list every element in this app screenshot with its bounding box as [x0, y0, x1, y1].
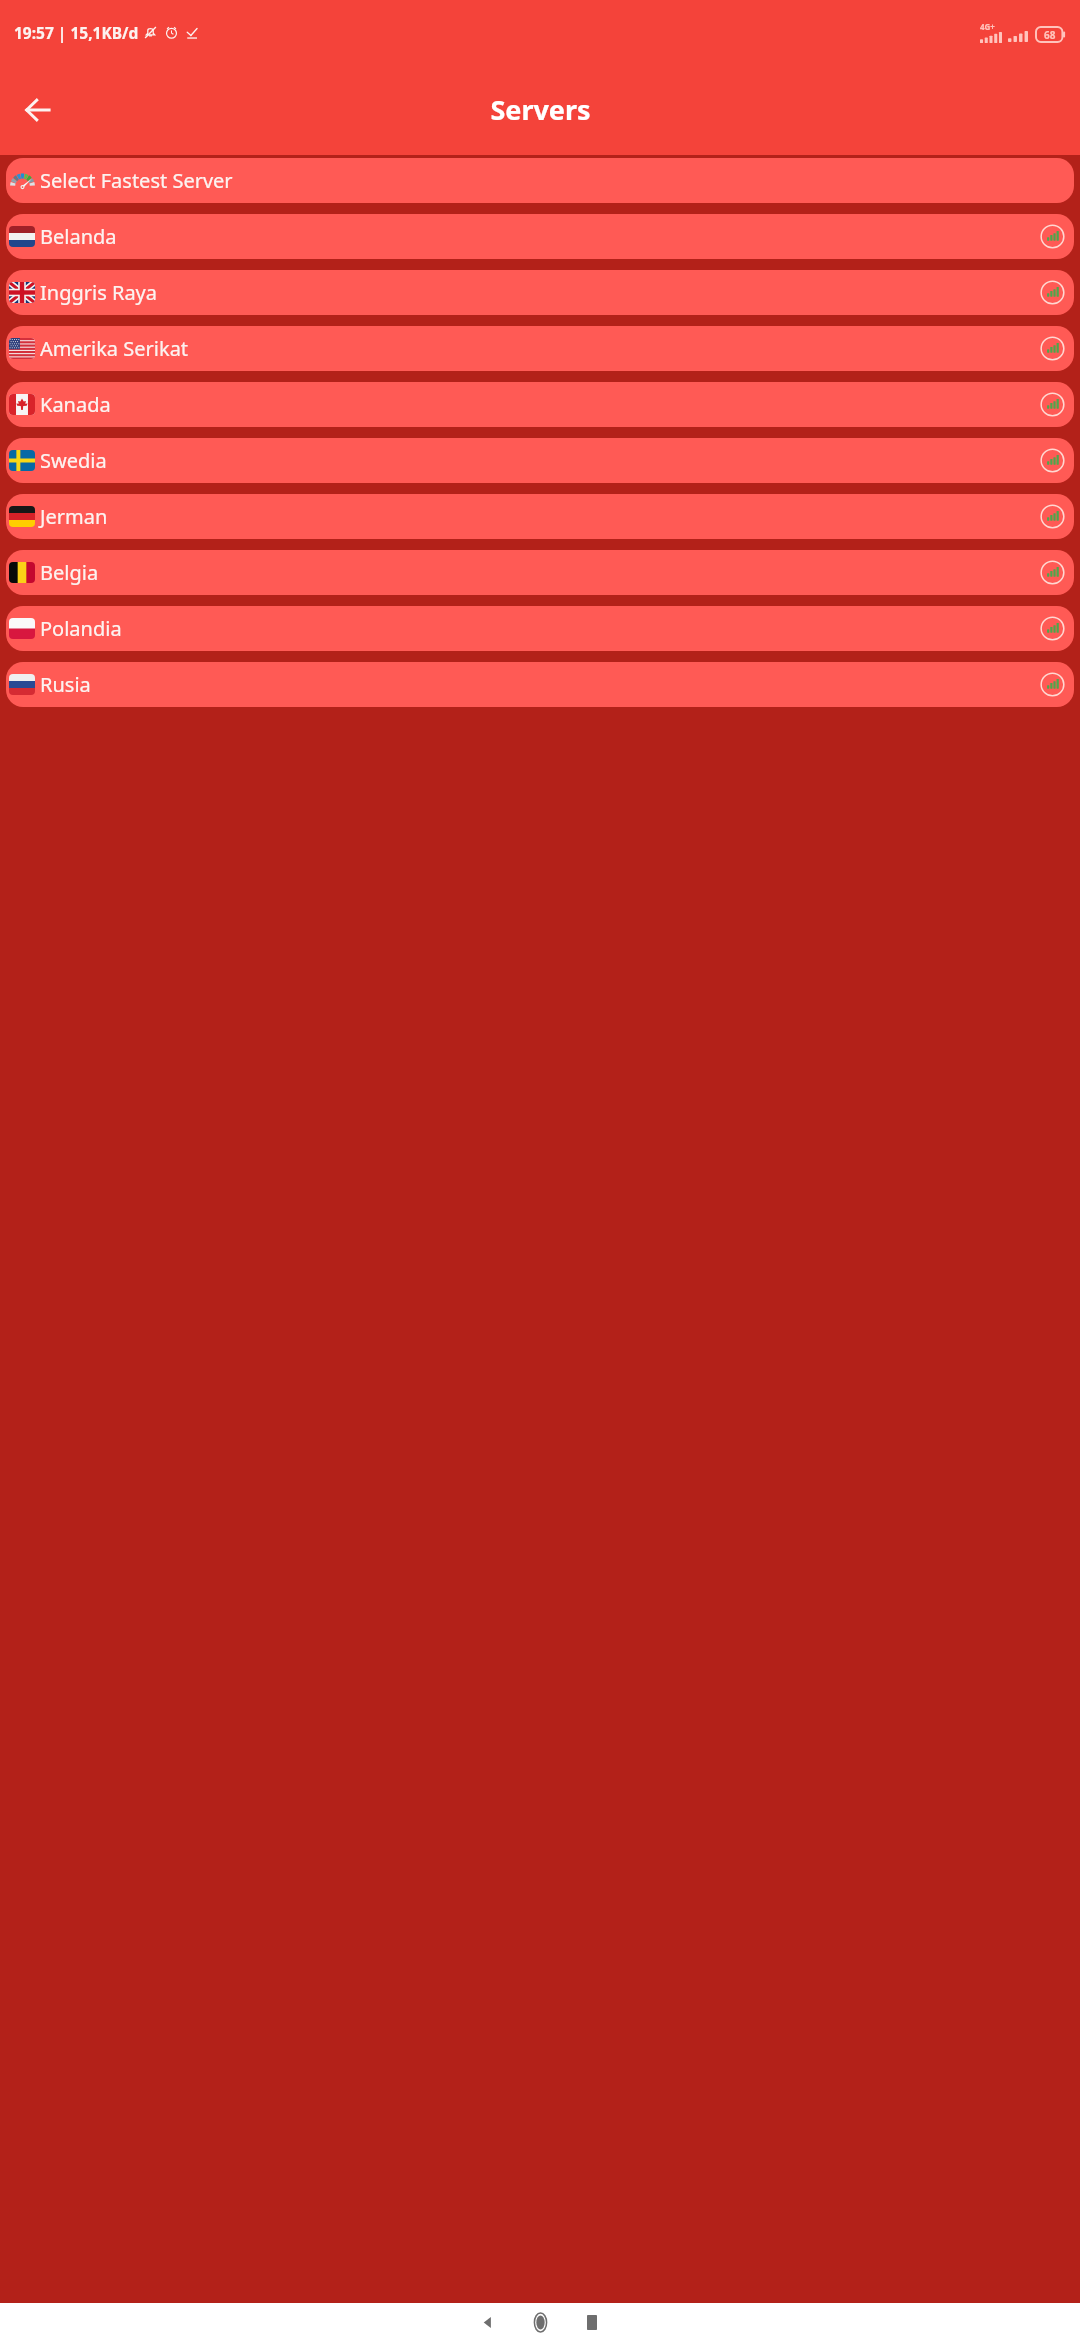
- staticText: Select Fastest Server: [40, 167, 233, 194]
- button[interactable]: Home: [522, 2304, 558, 2340]
- button[interactable]: Belgia: [6, 550, 1074, 595]
- button[interactable]: Jerman: [6, 494, 1074, 539]
- staticText: Jerman: [40, 503, 108, 530]
- button[interactable]: Belanda: [6, 214, 1074, 259]
- staticText: Swedia: [40, 447, 107, 474]
- button[interactable]: Swedia: [6, 438, 1074, 483]
- staticText: 68: [1044, 28, 1056, 42]
- button[interactable]: Back: [471, 2305, 505, 2339]
- button[interactable]: Polandia: [6, 606, 1074, 651]
- button[interactable]: Kanada: [6, 382, 1074, 427]
- staticText: Servers: [490, 91, 591, 128]
- staticText: Amerika Serikat: [40, 335, 189, 362]
- button[interactable]: Rusia: [6, 662, 1074, 707]
- button[interactable]: Select Fastest Server: [6, 158, 1074, 203]
- staticText: Polandia: [40, 615, 122, 642]
- button[interactable]: Recent apps: [575, 2305, 609, 2339]
- staticText: Belanda: [40, 223, 117, 250]
- staticText: Kanada: [40, 391, 111, 418]
- staticText: 4G+: [980, 21, 995, 32]
- button[interactable]: Inggris Raya: [6, 270, 1074, 315]
- staticText: Inggris Raya: [40, 279, 158, 306]
- button[interactable]: Amerika Serikat: [6, 326, 1074, 371]
- staticText: Belgia: [40, 559, 99, 586]
- staticText: Rusia: [40, 671, 91, 698]
- staticText: 19:57 | 15,1KB/d: [14, 22, 139, 43]
- button[interactable]: Back: [14, 86, 62, 134]
